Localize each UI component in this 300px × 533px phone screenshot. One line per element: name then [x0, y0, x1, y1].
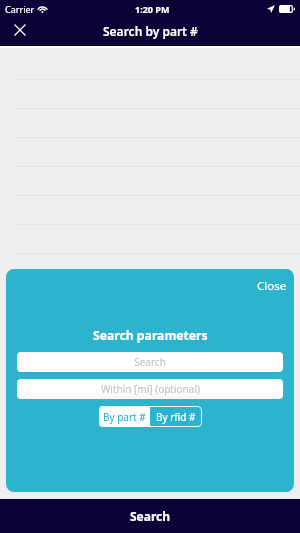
- staticText: 1:20 PM: [135, 3, 170, 15]
- button[interactable]: Close: [253, 275, 291, 297]
- button[interactable]: Close: [8, 18, 31, 41]
- staticText: Carrier: [5, 3, 35, 15]
- button[interactable]: Search: [0, 499, 300, 533]
- staticText: Within [mi] (optional): [101, 382, 200, 396]
- staticText: By rfid #: [156, 410, 196, 424]
- button[interactable]: Within [mi] (optional): [17, 379, 283, 399]
- staticText: Search: [134, 355, 166, 369]
- staticText: By part #: [103, 410, 146, 424]
- button[interactable]: By part #: [99, 406, 150, 427]
- staticText: Search parameters: [93, 327, 208, 344]
- button[interactable]: Search: [17, 352, 283, 372]
- staticText: Close: [257, 278, 287, 294]
- staticText: Search by part #: [103, 23, 198, 39]
- staticText: Search: [130, 508, 171, 524]
- button[interactable]: By rfid #: [150, 406, 202, 427]
